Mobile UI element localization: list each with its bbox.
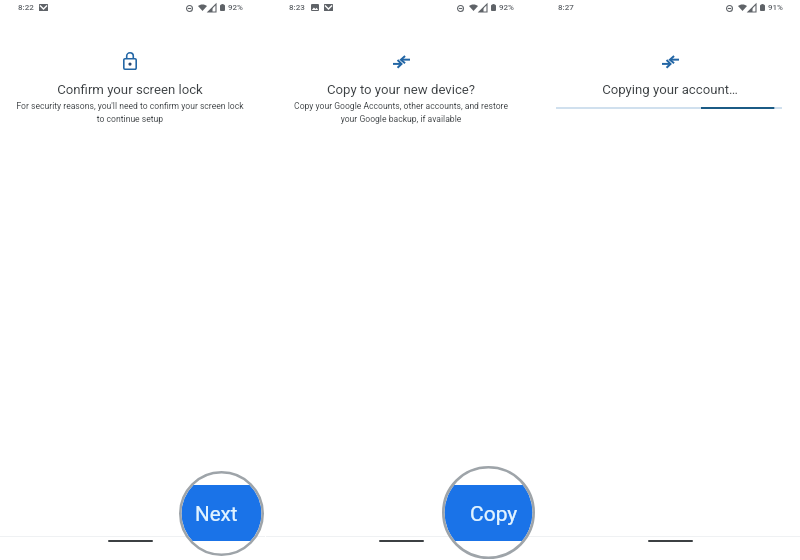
staticText: Confirm your screen lock [0,82,265,97]
staticText: 91% [768,3,783,12]
staticText: For security reasons, you'll need to con… [0,101,265,124]
staticText: Copy [470,502,518,527]
staticText: 92% [499,3,514,12]
staticText: Copy your Google Accounts, other account… [266,101,536,124]
staticText: 8:22 [18,3,34,12]
staticText: Next [195,502,238,526]
staticText: Copying your account… [535,82,800,97]
button[interactable]: Next [179,471,264,556]
staticText: 8:23 [289,3,305,12]
staticText: 92% [228,3,243,12]
staticText: Copy to your new device? [266,82,536,97]
staticText: 8:27 [558,3,574,12]
button[interactable]: Copy [442,466,535,559]
